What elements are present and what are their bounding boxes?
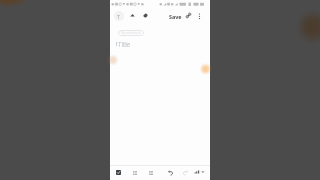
button[interactable]: Checkbox list [114, 168, 123, 177]
button[interactable]: Numbered list [146, 168, 155, 177]
button[interactable]: More options [195, 11, 204, 20]
button[interactable]: My notebook [118, 30, 144, 36]
button[interactable]: Shapes [128, 11, 137, 20]
button[interactable]: Save [168, 11, 182, 21]
button[interactable]: Text formatting [192, 167, 206, 177]
button[interactable]: Bulleted list [130, 168, 139, 177]
button[interactable]: Highlight colour [141, 11, 150, 20]
button[interactable]: Undo [166, 168, 175, 177]
button[interactable]: Attach [184, 11, 193, 20]
staticText: Save [169, 13, 182, 20]
staticText: T [117, 13, 121, 20]
button[interactable]: Redo [181, 168, 190, 177]
staticText: My notebook [121, 31, 141, 35]
button[interactable]: Title [118, 40, 131, 48]
button[interactable]: Text style [114, 11, 124, 21]
staticText: Title [118, 40, 131, 48]
